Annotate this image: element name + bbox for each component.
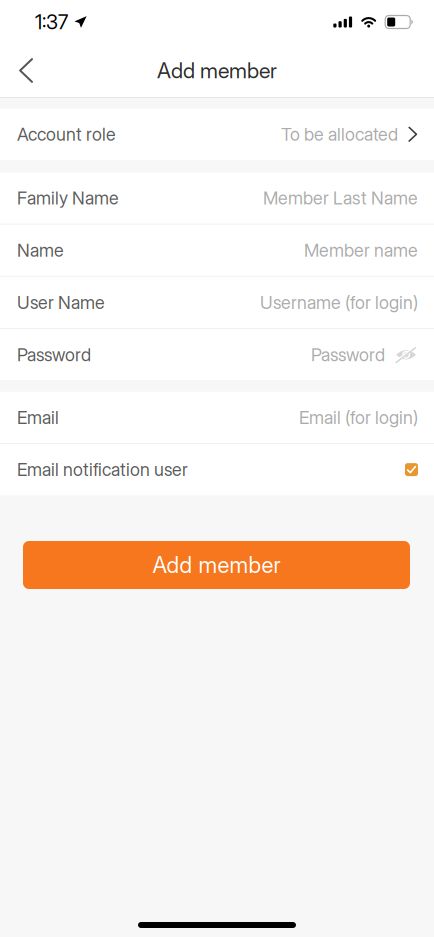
button[interactable]: Show password	[395, 345, 418, 364]
button[interactable]: Email notification user	[405, 463, 418, 476]
button[interactable]: Family Name	[0, 172, 434, 224]
staticText: 1:37	[35, 10, 68, 34]
button[interactable]: Back	[4, 48, 48, 92]
button[interactable]: Name	[0, 225, 434, 276]
staticText: Name	[17, 239, 64, 261]
staticText: Add member	[157, 58, 277, 83]
staticText: To be allocated	[281, 123, 398, 145]
button[interactable]: User Name	[0, 277, 434, 328]
staticText: Password	[17, 344, 91, 365]
button[interactable]: Email	[0, 392, 434, 443]
button[interactable]: Account role	[0, 108, 434, 160]
staticText: Email (for login)	[299, 407, 418, 428]
staticText: Password	[311, 344, 385, 365]
staticText: Account role	[17, 123, 116, 145]
button[interactable]: Add member	[23, 541, 410, 589]
staticText: Family Name	[17, 187, 119, 209]
staticText: Member Last Name	[263, 187, 418, 209]
staticText: Member name	[304, 239, 418, 261]
staticText: Add member	[152, 552, 280, 578]
staticText: Username (for login)	[260, 292, 418, 313]
staticText: Email notification user	[17, 459, 188, 480]
staticText: Email	[17, 407, 59, 428]
staticText: User Name	[17, 292, 105, 313]
